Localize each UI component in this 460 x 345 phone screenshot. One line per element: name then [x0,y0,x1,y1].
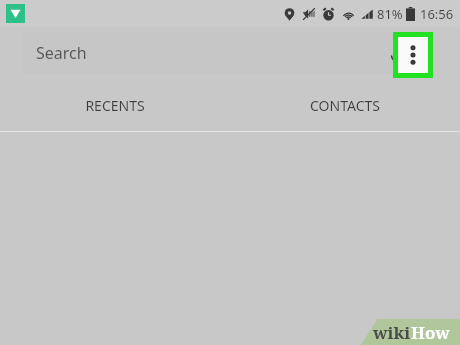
staticText: Search [36,42,87,64]
staticText: CONTACTS [310,96,380,115]
staticText: How [411,321,450,344]
button[interactable]: Search [22,32,416,74]
staticText: RECENTS [85,96,145,115]
staticText: 81% [377,5,403,23]
button[interactable]: Voice search [380,36,414,70]
button[interactable]: RECENTS [0,80,230,131]
button[interactable]: CONTACTS [230,80,460,131]
staticText: wiki [373,321,411,344]
button[interactable]: More options [398,37,428,73]
staticText: 16:56 [420,5,454,23]
